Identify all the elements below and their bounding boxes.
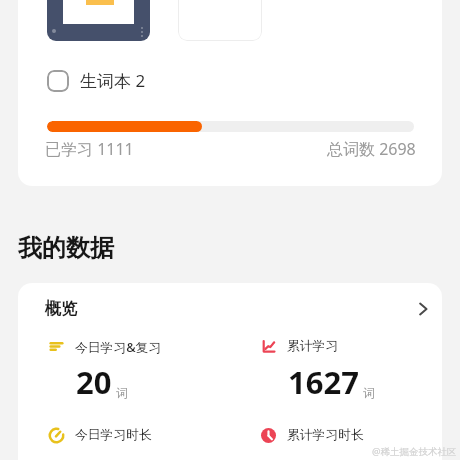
- staticText: 今日学习时长: [75, 427, 152, 443]
- staticText: 累计学习时长: [287, 427, 364, 443]
- staticText: 20: [76, 361, 112, 403]
- other: More: [415, 301, 431, 317]
- staticText: 词: [116, 385, 128, 400]
- staticText: 1627: [288, 361, 359, 403]
- staticText: 今日学习&复习: [75, 338, 162, 355]
- staticText: 我的数据: [18, 233, 114, 263]
- staticText: 已学习 1111: [45, 138, 134, 160]
- button[interactable]: 概览: [18, 283, 442, 327]
- staticText: 生词本 2: [80, 69, 146, 92]
- staticText: 总词数 2698: [327, 138, 416, 160]
- staticText: 概览: [45, 299, 77, 319]
- staticText: 词: [363, 385, 375, 400]
- staticText: 累计学习: [287, 338, 339, 354]
- staticText: @稀土掘金技术社区: [372, 445, 457, 458]
- button[interactable]: 生词本 2: [47, 69, 146, 92]
